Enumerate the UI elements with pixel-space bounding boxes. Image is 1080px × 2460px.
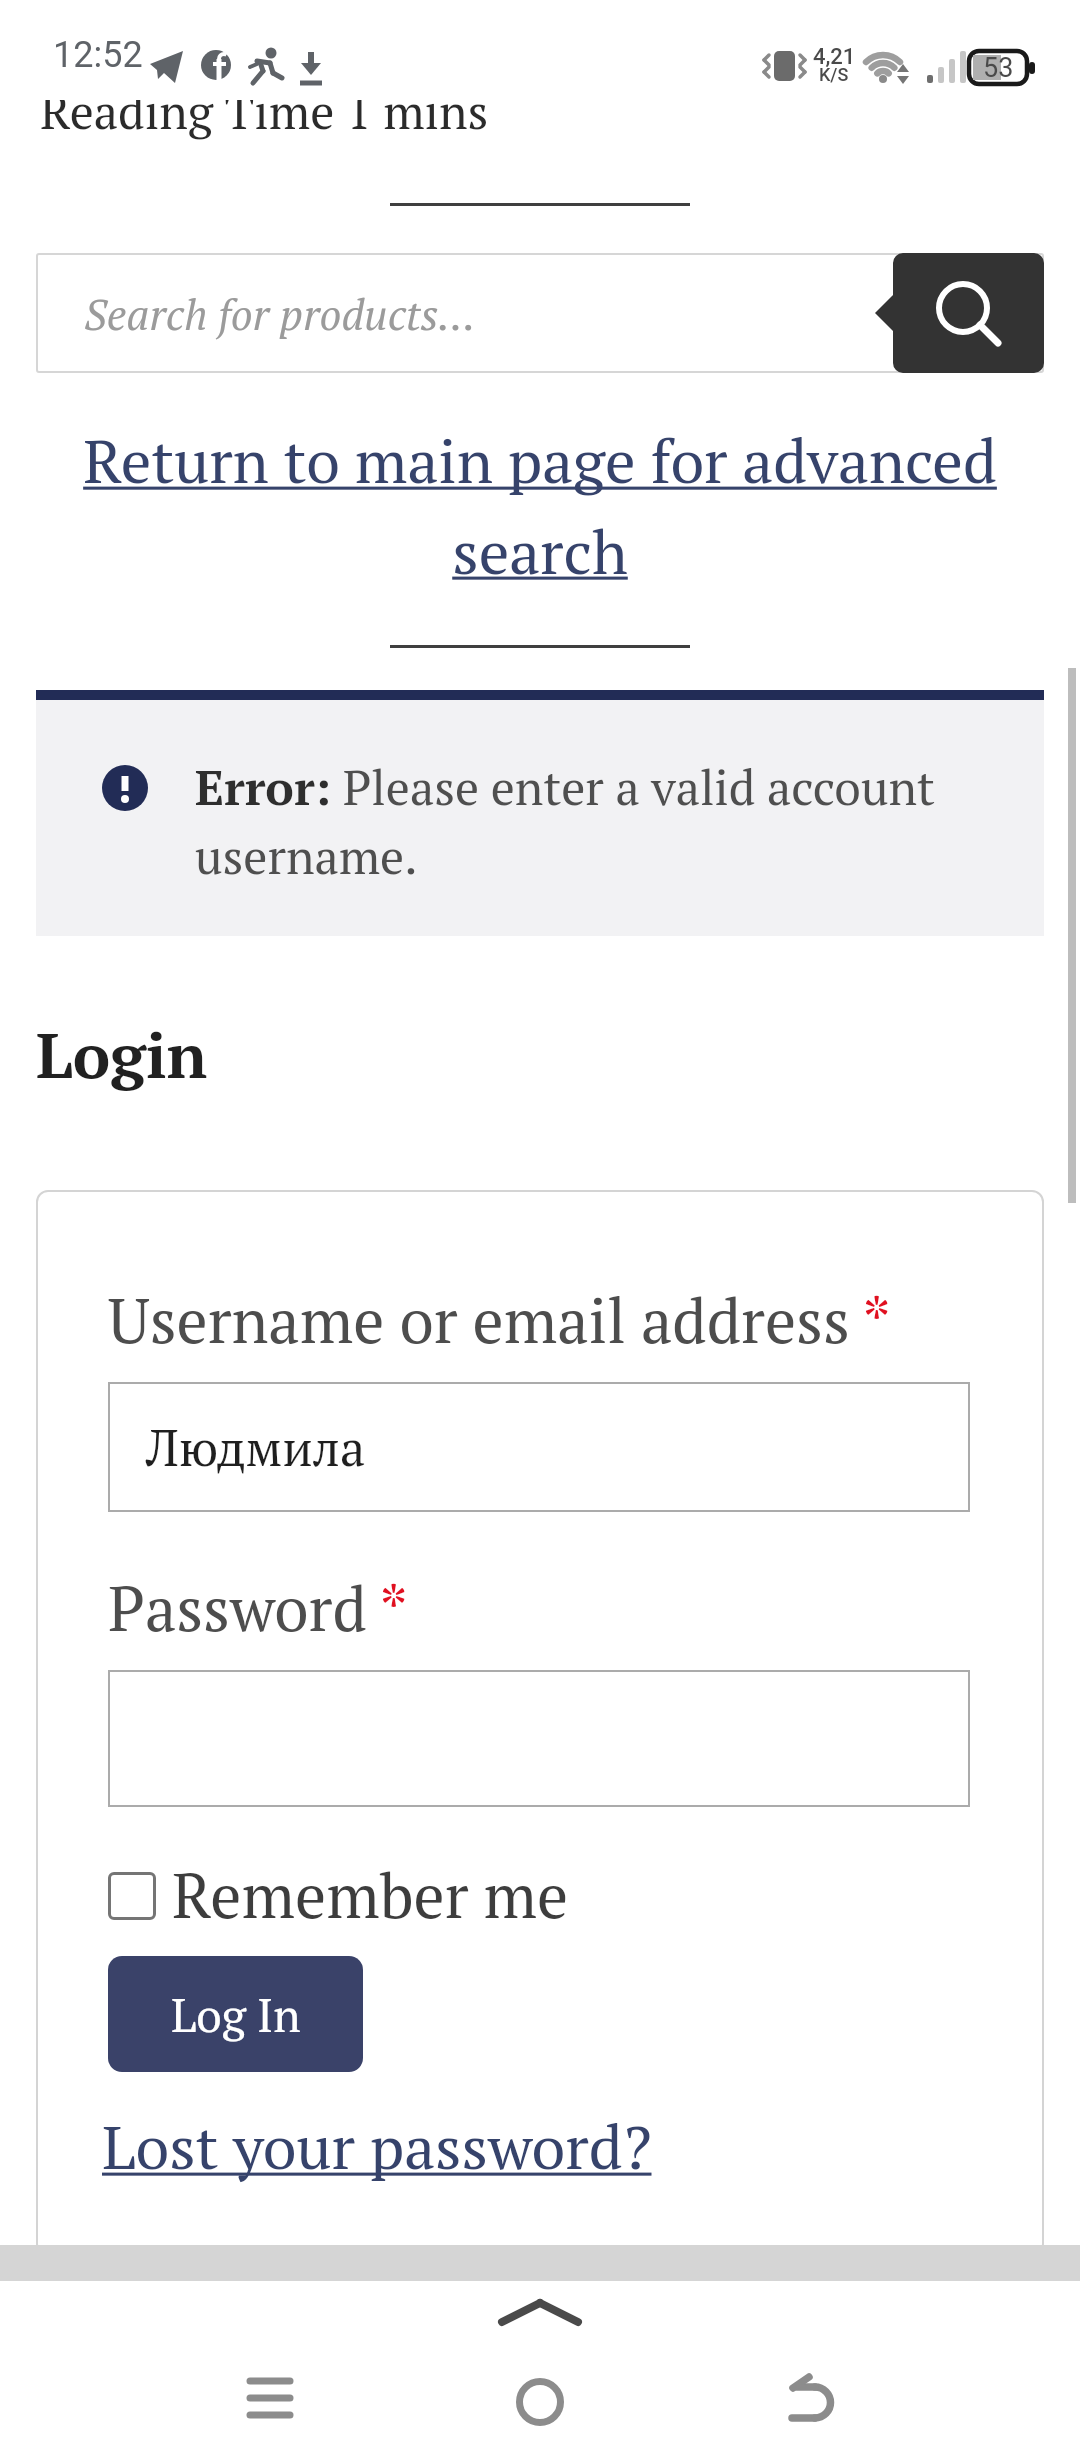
staticText: Log In	[171, 1984, 301, 2045]
staticText: username.	[195, 824, 418, 888]
button[interactable]	[220, 2361, 320, 2451]
button[interactable]	[108, 1670, 970, 1807]
button[interactable]	[480, 2281, 600, 2341]
button[interactable]: Log In	[108, 1956, 363, 2072]
staticText: Login	[36, 1013, 208, 1096]
button[interactable]	[760, 2361, 860, 2451]
button[interactable]	[850, 253, 1044, 373]
button[interactable]: Людмила	[108, 1382, 970, 1512]
staticText: 12:52	[53, 34, 143, 76]
staticText: Search for products...	[84, 285, 476, 342]
staticText: 53	[983, 52, 1014, 84]
button[interactable]: Return to main page for advanced search	[0, 420, 1080, 650]
staticText: Lost your password?	[102, 2106, 652, 2187]
button[interactable]	[490, 2361, 590, 2451]
staticText: Людмила	[146, 1414, 366, 1480]
staticText: Username or email address *	[108, 1279, 892, 1361]
button[interactable]: Search for products...	[36, 253, 1044, 373]
button[interactable]	[108, 1872, 578, 1920]
staticText: Return to main page for advanced search	[83, 420, 997, 591]
staticText: Password *	[108, 1567, 409, 1649]
staticText: Error: Please enter a valid account	[195, 755, 935, 819]
staticText: Reading Time 1 mins	[40, 79, 489, 143]
staticText: 4,21	[813, 44, 856, 68]
staticText: K/S	[819, 64, 849, 84]
button[interactable]: Lost your password?	[102, 2086, 652, 2206]
staticText: Remember me	[172, 1854, 569, 1936]
